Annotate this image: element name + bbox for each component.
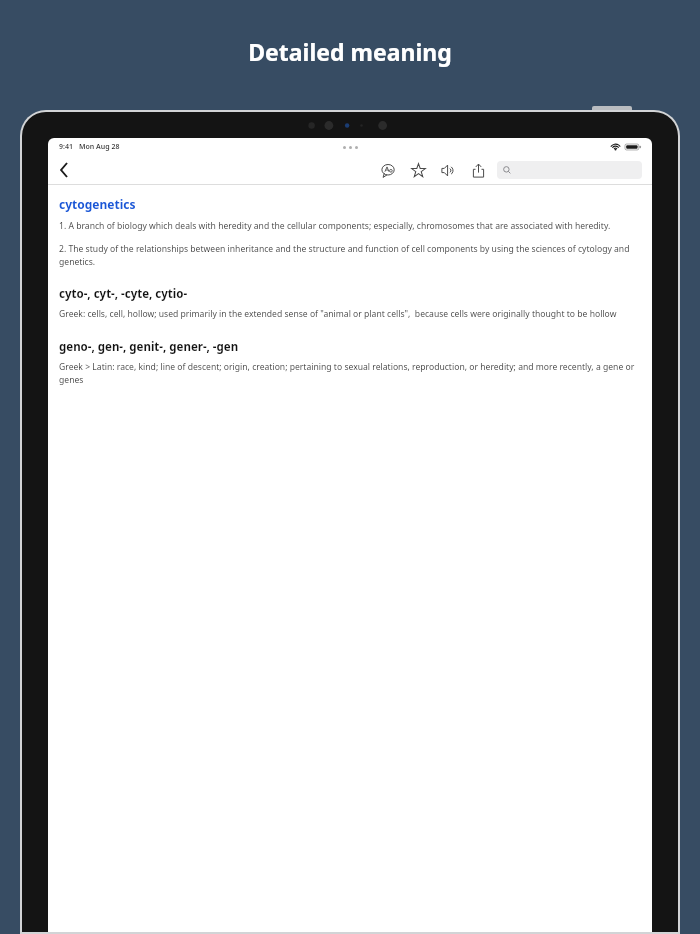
staticText: geno-, gen-, genit-, gener-, -gen: [59, 339, 239, 355]
button[interactable]: Favorite: [408, 160, 428, 180]
button[interactable]: [497, 161, 642, 179]
button[interactable]: Speak: [438, 160, 458, 180]
staticText: 9:41: [59, 142, 73, 152]
staticText: Greek > Latin: race, kind; line of desce…: [59, 361, 641, 385]
staticText: Detailed meaning: [248, 36, 452, 67]
staticText: Mon Aug 28: [79, 142, 120, 152]
button[interactable]: Back: [53, 159, 75, 181]
staticText: 2. The study of the relationships betwee…: [59, 243, 641, 267]
staticText: Greek: cells, cell, hollow; used primari…: [59, 308, 617, 320]
staticText: cytogenetics: [59, 196, 136, 212]
staticText: 1. A branch of biology which deals with …: [59, 220, 611, 232]
staticText: cyto-, cyt-, -cyte, cytio-: [59, 286, 188, 302]
button[interactable]: Translate: [378, 160, 398, 180]
button[interactable]: Share: [468, 160, 488, 180]
